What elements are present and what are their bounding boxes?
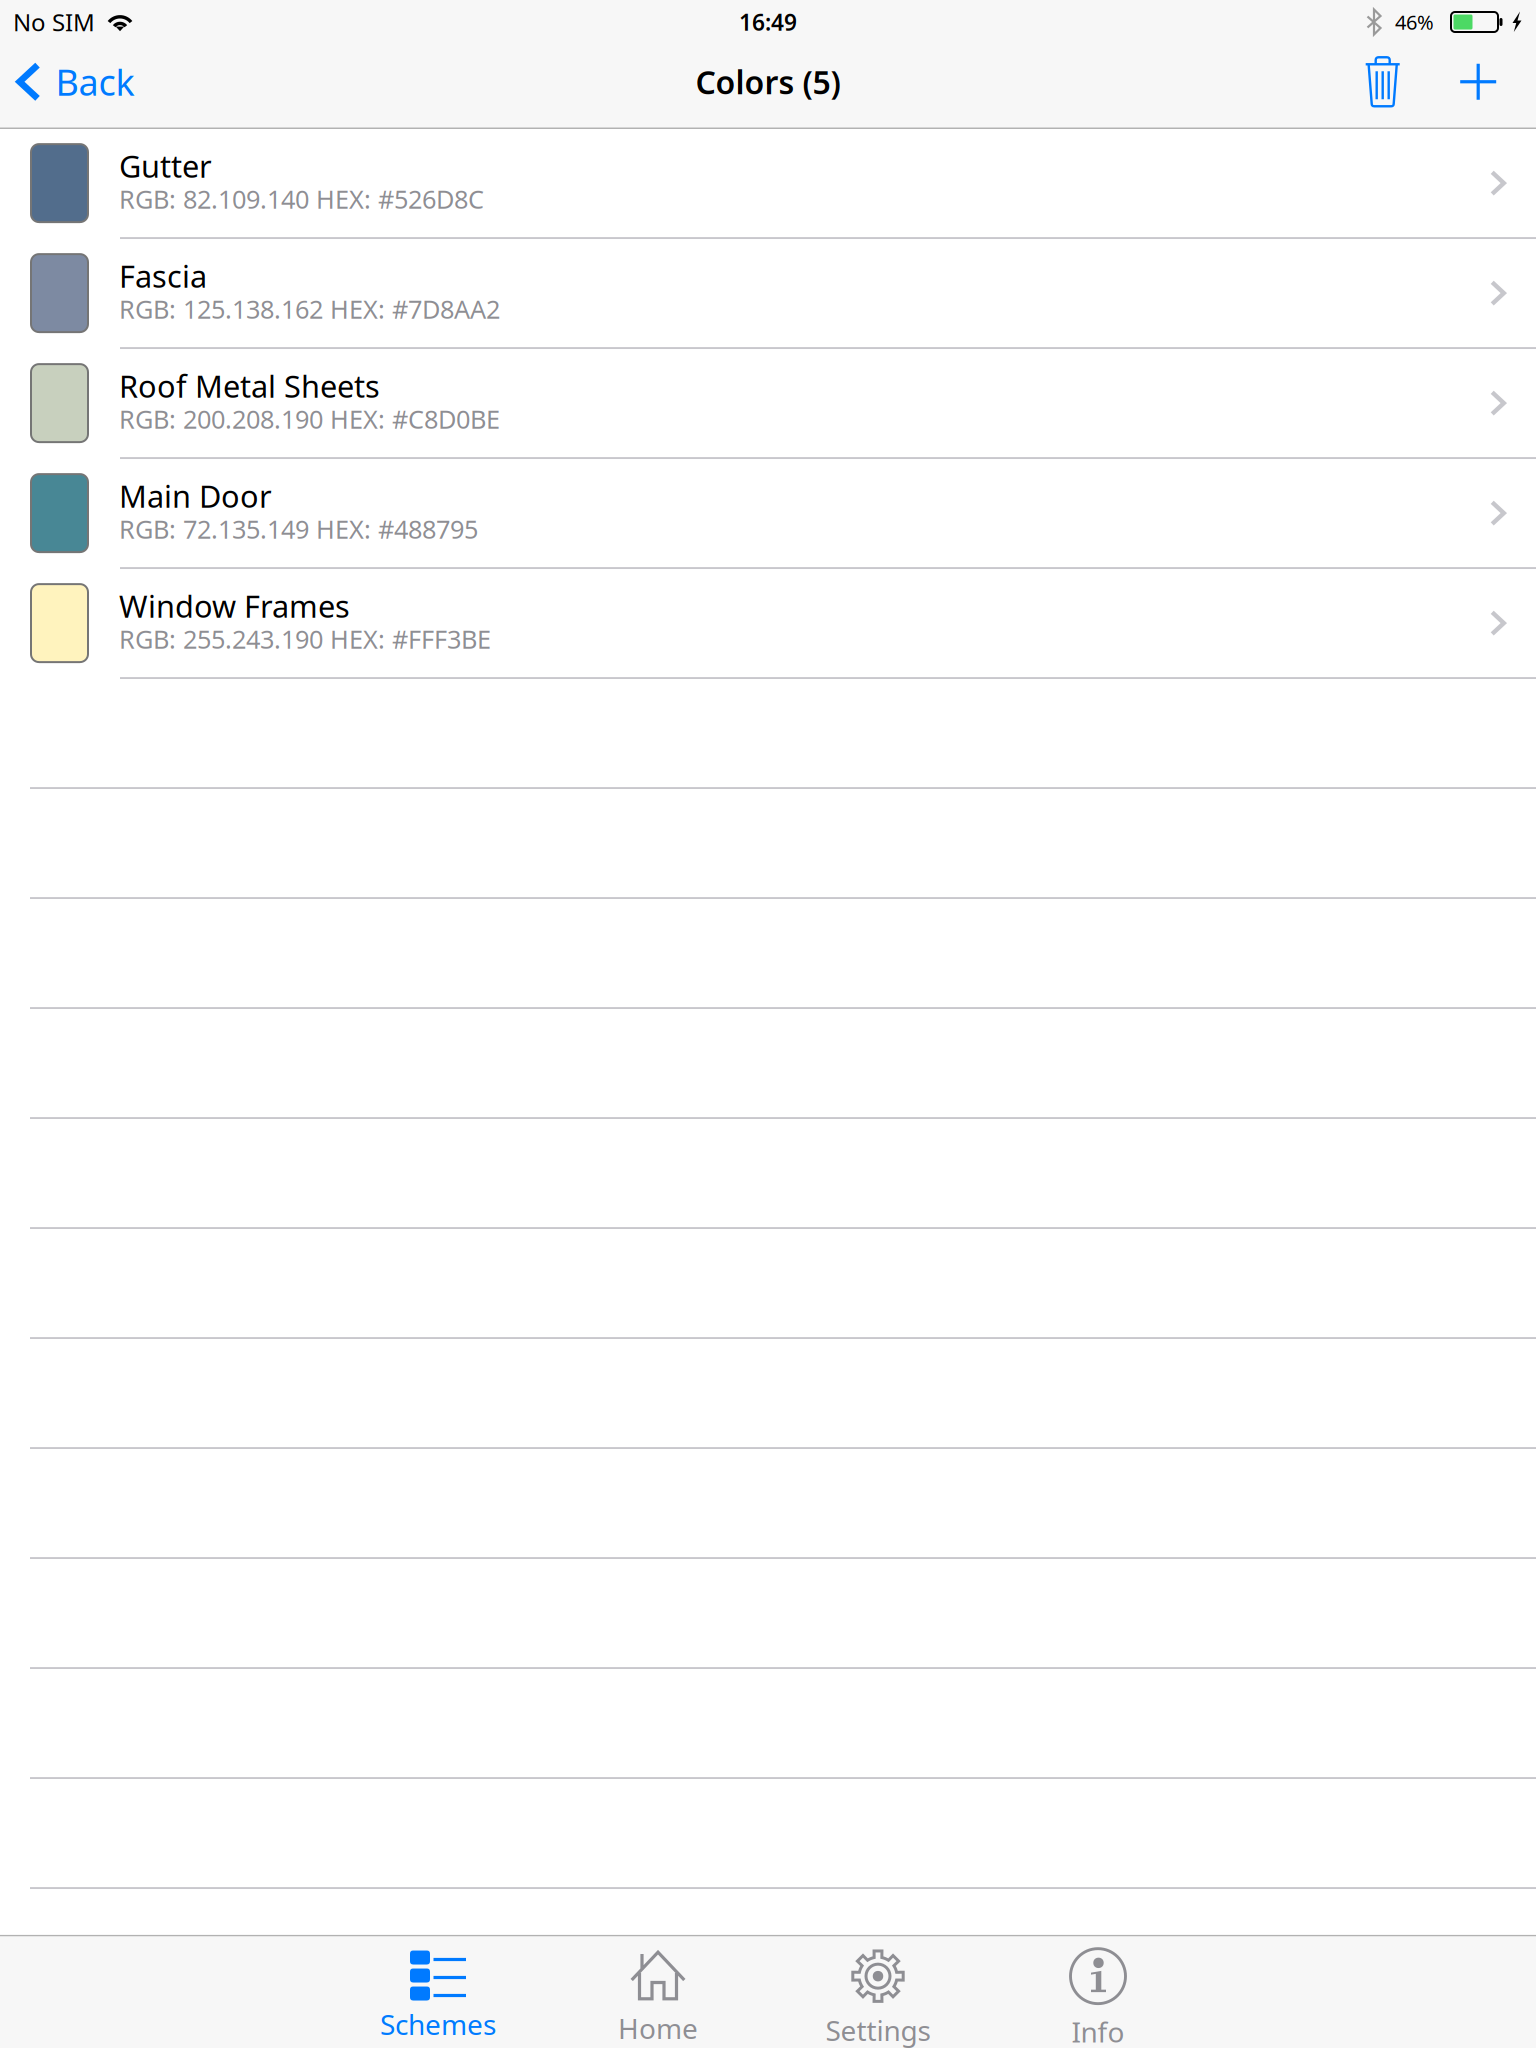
button[interactable]: Schemes bbox=[328, 1936, 548, 2048]
staticText: Settings bbox=[825, 2012, 930, 2048]
staticText: 46% bbox=[1395, 9, 1434, 35]
button[interactable]: Gutter bbox=[0, 129, 1536, 239]
button[interactable]: Settings bbox=[768, 1936, 988, 2048]
staticText: Fascia bbox=[119, 255, 207, 296]
staticText: Home bbox=[618, 2009, 698, 2047]
button[interactable]: Delete bbox=[1341, 44, 1460, 127]
staticText: Roof Metal Sheets bbox=[119, 365, 380, 406]
staticText: RGB: 72.135.149 HEX: #488795 bbox=[119, 512, 478, 546]
staticText: Info bbox=[1071, 2013, 1124, 2048]
staticText: RGB: 125.138.162 HEX: #7D8AA2 bbox=[119, 292, 500, 326]
staticText: 16:49 bbox=[739, 7, 797, 37]
staticText: Window Frames bbox=[119, 585, 350, 626]
staticText: No SIM bbox=[13, 6, 95, 38]
staticText: RGB: 82.109.140 HEX: #526D8C bbox=[119, 182, 484, 216]
button[interactable]: Info bbox=[988, 1936, 1208, 2048]
staticText: Back bbox=[55, 58, 134, 106]
button[interactable]: Add bbox=[1460, 44, 1536, 127]
button[interactable]: Home bbox=[548, 1936, 768, 2048]
staticText: Colors (5) bbox=[695, 60, 840, 103]
button[interactable]: Back bbox=[0, 44, 150, 127]
staticText: RGB: 255.243.190 HEX: #FFF3BE bbox=[119, 622, 491, 656]
button[interactable]: Window Frames bbox=[0, 569, 1536, 679]
staticText: RGB: 200.208.190 HEX: #C8D0BE bbox=[119, 402, 500, 436]
staticText: Schemes bbox=[380, 2005, 496, 2043]
staticText: Gutter bbox=[119, 145, 212, 186]
button[interactable]: Fascia bbox=[0, 239, 1536, 349]
staticText: Main Door bbox=[119, 475, 272, 516]
button[interactable]: Roof Metal Sheets bbox=[0, 349, 1536, 459]
button[interactable]: Main Door bbox=[0, 459, 1536, 569]
